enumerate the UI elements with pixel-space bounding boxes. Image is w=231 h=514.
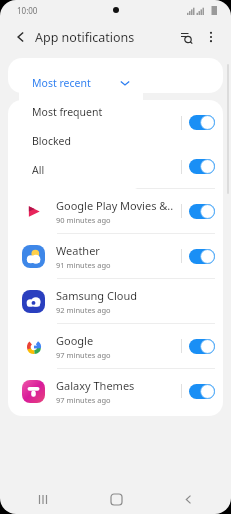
staticText: App notifications: [35, 29, 135, 46]
staticText: Google: [56, 333, 94, 348]
staticText: 10:00: [17, 5, 38, 16]
button[interactable]: Google Play Movies &..: [8, 189, 223, 233]
staticText: All: [32, 163, 45, 177]
button[interactable]: Most recent: [19, 68, 143, 97]
staticText: Samsung Cloud: [56, 288, 137, 303]
button[interactable]: Most frequent: [19, 97, 143, 126]
button[interactable]: Google: [8, 324, 223, 368]
button[interactable]: Blocked: [19, 126, 143, 155]
button[interactable]: Back: [8, 24, 34, 50]
button[interactable]: Weather: [8, 234, 223, 278]
button[interactable]: Toggle: [189, 249, 215, 264]
button[interactable]: Toggle: [189, 339, 215, 354]
staticText: Google Play Movies &..: [56, 198, 174, 213]
staticText: 91 minutes ago: [56, 260, 111, 270]
button[interactable]: Search: [173, 24, 199, 50]
button[interactable]: More options: [199, 25, 223, 49]
staticText: 92 minutes ago: [56, 305, 111, 315]
button[interactable]: Toggle: [189, 204, 215, 219]
staticText: Blocked: [32, 134, 71, 148]
staticText: 90 minutes ago: [56, 215, 111, 225]
button[interactable]: Back: [175, 486, 201, 512]
button[interactable]: Samsung Cloud: [8, 279, 223, 323]
staticText: Galaxy Themes: [56, 378, 135, 393]
staticText: 97 minutes ago: [56, 350, 111, 360]
button[interactable]: Galaxy Themes: [8, 369, 223, 413]
button[interactable]: All: [19, 155, 143, 184]
button[interactable]: Toggle: [189, 384, 215, 399]
button[interactable]: Recents: [30, 486, 56, 512]
staticText: Most recent: [32, 76, 91, 90]
staticText: 97 minutes ago: [56, 395, 111, 405]
staticText: Most frequent: [32, 105, 103, 119]
button[interactable]: Home: [103, 486, 129, 512]
staticText: Weather: [56, 243, 100, 258]
